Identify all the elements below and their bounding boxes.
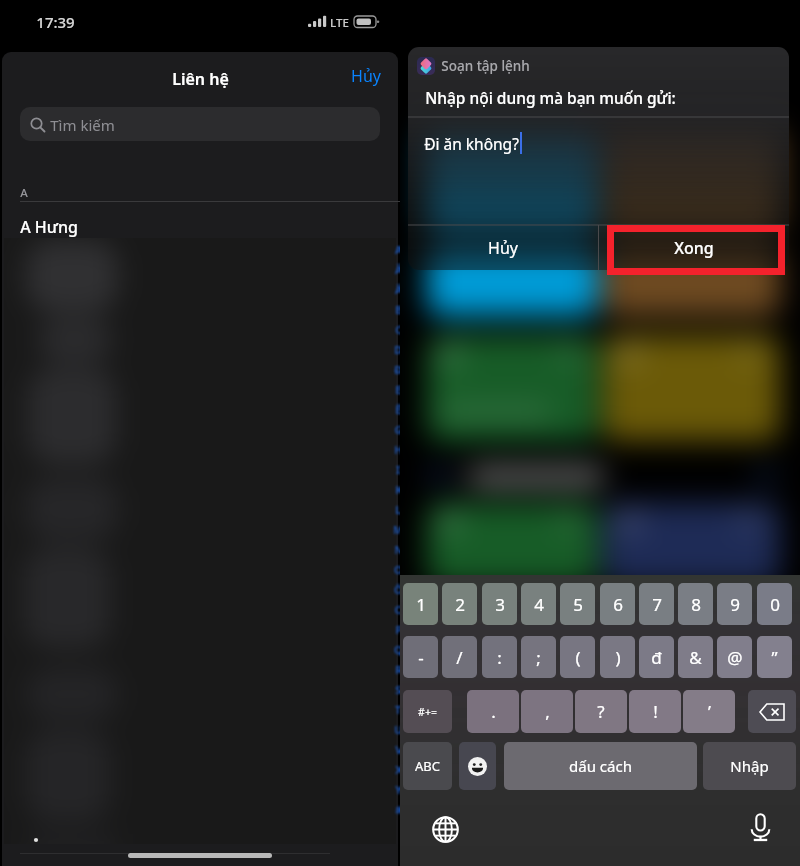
button[interactable]: ( — [560, 636, 595, 678]
staticText: Liên hệ — [172, 68, 229, 90]
staticText: Hủy — [351, 65, 381, 87]
staticText: 3 — [495, 593, 505, 616]
staticText: ? — [597, 700, 605, 723]
button[interactable]: 1 — [403, 583, 438, 625]
staticText: Đ — [394, 363, 400, 377]
staticText: 1 — [416, 593, 426, 616]
staticText: H — [394, 443, 400, 457]
button[interactable]: 7 — [639, 583, 674, 625]
staticText: ) — [615, 646, 621, 669]
staticText: 7 — [652, 593, 662, 616]
button[interactable]: Backspace — [748, 690, 796, 733]
staticText: Nhập nội dung mà bạn muốn gửi: — [425, 87, 676, 108]
button[interactable]: - — [403, 636, 438, 678]
staticText: U — [394, 723, 400, 737]
staticText: Tìm kiếm — [50, 115, 115, 135]
button[interactable]: Tìm kiếm — [20, 107, 380, 141]
button[interactable]: dấu cách — [504, 742, 697, 790]
button[interactable]: 4 — [521, 583, 556, 625]
staticText: Đi ăn không? — [424, 133, 519, 154]
staticText: ” — [771, 646, 778, 669]
staticText: T — [395, 703, 400, 717]
staticText: A — [395, 243, 400, 257]
staticText: ’ — [708, 700, 711, 723]
button[interactable]: Hủy — [408, 226, 598, 270]
button[interactable]: : — [482, 636, 517, 678]
button[interactable]: 9 — [717, 583, 752, 625]
staticText: N — [394, 543, 400, 557]
button[interactable]: Change keyboard — [428, 812, 462, 846]
button[interactable]: ABC — [403, 742, 452, 790]
staticText: @ — [727, 646, 743, 669]
button[interactable]: & — [678, 636, 713, 678]
staticText: , — [545, 700, 550, 723]
button[interactable]: ? — [575, 690, 627, 733]
staticText: Y — [395, 783, 400, 797]
staticText: G — [394, 423, 400, 437]
button[interactable]: ” — [757, 636, 792, 678]
staticText: 0 — [770, 593, 780, 616]
button[interactable]: đ — [639, 636, 674, 678]
staticText: I — [396, 463, 400, 477]
staticText: X — [395, 763, 400, 777]
staticText: . — [491, 700, 496, 723]
staticText: 9 — [730, 593, 740, 616]
button[interactable]: Emoji — [459, 742, 496, 790]
staticText: Xong — [674, 237, 714, 259]
button[interactable]: Alphabet index — [390, 240, 400, 852]
staticText: A Hưng — [20, 216, 78, 238]
button[interactable]: @ — [717, 636, 752, 678]
staticText: R — [395, 663, 400, 677]
button[interactable]: Hủy — [340, 63, 392, 89]
staticText: P — [395, 623, 400, 637]
staticText: ABC — [415, 757, 440, 775]
staticText: 8 — [691, 593, 701, 616]
staticText: S — [395, 683, 400, 697]
button[interactable]: / — [442, 636, 477, 678]
button[interactable]: 2 — [442, 583, 477, 625]
staticText: Ơ — [394, 603, 400, 617]
button[interactable]: 5 — [560, 583, 595, 625]
button[interactable]: Xong — [599, 226, 789, 270]
button[interactable]: ) — [600, 636, 635, 678]
staticText: B — [395, 303, 400, 317]
button[interactable]: 3 — [482, 583, 517, 625]
staticText: O — [394, 563, 400, 577]
staticText: Hủy — [488, 237, 518, 259]
staticText: ( — [575, 646, 581, 669]
button[interactable]: A Hưng — [20, 216, 420, 242]
staticText: K — [395, 483, 400, 497]
staticText: ! — [653, 700, 658, 723]
staticText: #+= — [418, 705, 437, 719]
button[interactable]: 8 — [678, 583, 713, 625]
button[interactable]: Nhập — [703, 742, 796, 790]
staticText: M — [393, 523, 400, 537]
staticText: Q — [394, 643, 400, 657]
staticText: 17:39 — [36, 12, 75, 32]
button[interactable]: ! — [629, 690, 681, 733]
staticText: Nhập — [730, 756, 769, 776]
staticText: A — [20, 185, 28, 201]
staticText: V — [395, 743, 400, 757]
staticText: 5 — [573, 593, 583, 616]
button[interactable]: 0 — [757, 583, 792, 625]
button[interactable]: 6 — [600, 583, 635, 625]
staticText: Ô — [394, 583, 400, 597]
button[interactable]: , — [521, 690, 573, 733]
staticText: # — [395, 803, 400, 817]
staticText: Â — [395, 283, 400, 297]
staticText: / — [456, 646, 463, 669]
staticText: Soạn tập lệnh — [441, 57, 530, 75]
staticText: : — [497, 646, 502, 669]
button[interactable]: . — [467, 690, 519, 733]
staticText: C — [395, 323, 400, 337]
button[interactable]: #+= — [403, 690, 452, 733]
staticText: L — [395, 503, 400, 517]
staticText: dấu cách — [569, 756, 632, 776]
staticText: Ă — [395, 263, 400, 277]
staticText: đ — [651, 646, 662, 669]
button[interactable]: ’ — [683, 690, 735, 733]
staticText: 6 — [613, 593, 623, 616]
button[interactable]: Dictate — [744, 811, 776, 843]
button[interactable]: ; — [521, 636, 556, 678]
